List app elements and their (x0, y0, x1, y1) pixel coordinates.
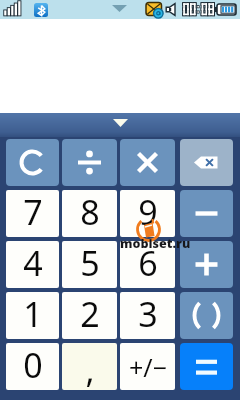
button[interactable]: Bluetooth (34, 3, 48, 17)
staticText: +/− (129, 350, 167, 384)
button[interactable]: 5 (62, 241, 117, 288)
button[interactable]: +/− (120, 343, 175, 390)
button[interactable]: 7 (6, 190, 59, 237)
button[interactable]: 2 (62, 292, 117, 339)
staticText: 3 (138, 292, 158, 337)
staticText: 4 (23, 241, 43, 286)
button[interactable]: 6 (120, 241, 175, 288)
staticText: 2 (80, 292, 100, 337)
button[interactable]: 3 (120, 292, 175, 339)
staticText: 6 (138, 241, 158, 286)
button[interactable]: 1 (6, 292, 59, 339)
staticText: , (85, 347, 95, 390)
button[interactable]: 0 (6, 343, 59, 390)
button[interactable]: Multiply (120, 139, 175, 186)
button[interactable]: 9 (120, 190, 175, 237)
button[interactable]: , (62, 343, 117, 390)
staticText: 5 (80, 241, 100, 286)
button[interactable]: Parentheses (180, 292, 233, 339)
button[interactable]: Backspace (180, 139, 233, 186)
staticText: 0 (23, 343, 43, 388)
button[interactable]: Equals (180, 343, 233, 390)
button[interactable]: Sound profile (165, 3, 179, 16)
button[interactable]: 4 (6, 241, 59, 288)
staticText: 1 (23, 292, 43, 337)
staticText: 9 (138, 190, 158, 235)
button[interactable]: Clear (6, 139, 59, 186)
button[interactable]: Messages (145, 1, 163, 18)
button[interactable]: 8 (62, 190, 117, 237)
staticText: 7 (23, 190, 43, 235)
staticText: 8 (80, 190, 100, 235)
staticText: mobiset.ru (120, 235, 191, 252)
button[interactable]: Plus (180, 241, 233, 288)
button[interactable]: Expand (112, 5, 127, 12)
button[interactable]: Collapse keypad (0, 113, 240, 137)
button[interactable]: Divide (62, 139, 117, 186)
button[interactable]: Minus (180, 190, 233, 237)
